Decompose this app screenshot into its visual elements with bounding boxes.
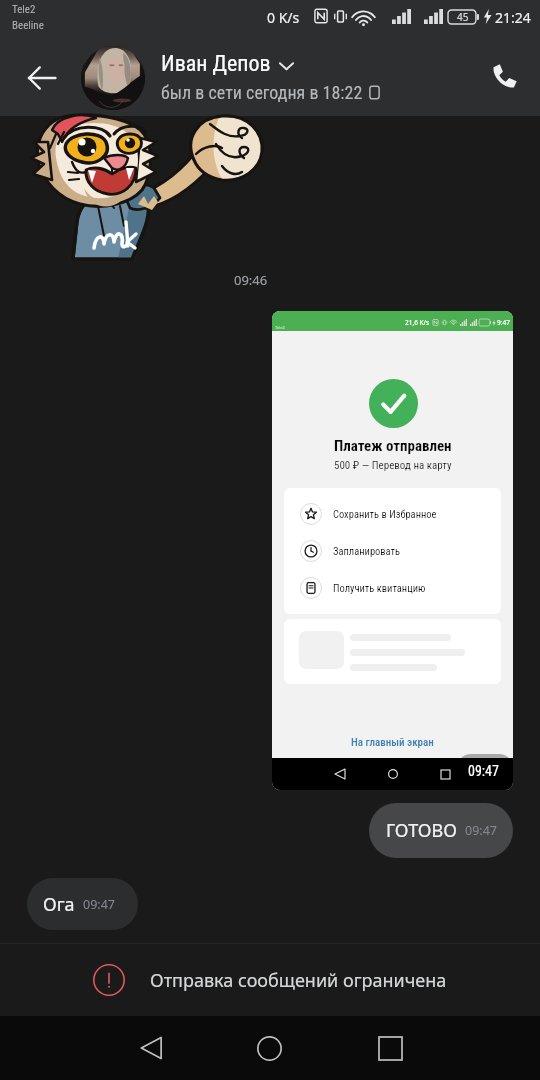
staticText: был в сети сегодня в 18:22 <box>161 82 363 103</box>
staticText: Отправка сообщений ограничена <box>150 968 447 993</box>
button[interactable]: Profile photo <box>81 46 145 110</box>
button[interactable]: Home <box>245 1016 293 1080</box>
button[interactable]: Tele2 <box>272 311 513 790</box>
staticText: Запланировать <box>333 545 401 557</box>
staticText: 500 ₽ — Перевод на карту <box>334 459 452 472</box>
staticText: Платеж отправлен <box>334 437 452 455</box>
button[interactable]: Сохранить в Избранное <box>284 500 501 528</box>
staticText: 45 <box>457 10 469 24</box>
staticText: 0 K/s <box>267 8 300 27</box>
button[interactable]: Получить квитанцию <box>284 574 501 602</box>
staticText: Beeline <box>12 19 44 32</box>
button[interactable]: На главный экран <box>345 734 440 751</box>
staticText: 21:24 <box>495 8 531 27</box>
staticText: 21,6 K/s <box>405 318 430 327</box>
staticText: 09:46 <box>234 271 268 289</box>
button[interactable]: Ога <box>27 878 138 930</box>
staticText: Иван Депов <box>161 51 271 77</box>
button[interactable]: Call <box>476 47 534 105</box>
staticText: 9:47 <box>497 318 510 327</box>
staticText: 09:47 <box>468 763 499 779</box>
button[interactable]: Иван Депов <box>161 51 380 103</box>
staticText: Сохранить в Избранное <box>333 508 437 520</box>
button[interactable]: Recent apps <box>366 1016 414 1080</box>
button[interactable]: Back <box>127 1016 175 1080</box>
staticText: ГОТОВО <box>386 818 457 843</box>
staticText: 09:47 <box>83 896 115 913</box>
staticText: Ога <box>43 892 75 917</box>
button[interactable]: Back <box>8 44 76 112</box>
staticText: На главный экран <box>351 736 434 749</box>
staticText: Получить квитанцию <box>333 582 426 594</box>
staticText: Tele2 <box>12 3 36 16</box>
staticText: Tele2 <box>275 325 285 330</box>
button[interactable]: ГОТОВО <box>369 803 513 858</box>
button[interactable]: Запланировать <box>284 537 501 565</box>
button[interactable]: Отправка сообщений ограничена <box>0 944 540 1016</box>
staticText: 09:47 <box>465 822 497 839</box>
